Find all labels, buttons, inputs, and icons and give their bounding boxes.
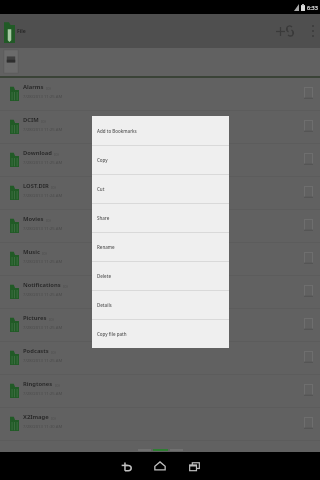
button[interactable]: Share	[92, 203, 229, 232]
button[interactable]: Select item	[299, 84, 317, 102]
staticText: (0)	[51, 350, 56, 355]
button[interactable]: Details	[92, 290, 229, 319]
button[interactable]: sdcard	[4, 50, 18, 73]
staticText: (0)	[46, 86, 51, 91]
button[interactable]: Back	[113, 452, 139, 480]
button[interactable]: Alarms	[0, 78, 320, 111]
staticText: (0)	[46, 218, 51, 223]
staticText: (0)	[51, 185, 56, 190]
button[interactable]: Add	[271, 20, 289, 42]
button[interactable]: LOST.DIR	[0, 177, 320, 210]
staticText: Copy file path	[97, 331, 127, 337]
staticText: 7/28/2013 11:25 AM	[23, 160, 63, 166]
staticText: File	[17, 28, 26, 35]
staticText: (0)	[42, 251, 47, 256]
button[interactable]: More options	[307, 20, 319, 42]
staticText: 6:33	[307, 4, 318, 11]
button[interactable]: Pictures	[0, 309, 320, 342]
staticText: 7/28/2013 11:24 AM	[23, 193, 63, 199]
button[interactable]: App icon	[4, 20, 15, 43]
staticText: 7/28/2013 11:25 AM	[23, 127, 63, 133]
staticText: 7/28/2013 11:30 AM	[23, 424, 63, 430]
button[interactable]: Select item	[299, 150, 317, 168]
staticText: (0)	[41, 119, 46, 124]
staticText: 7/28/2013 11:25 AM	[23, 391, 63, 397]
button[interactable]: Notifications	[0, 276, 320, 309]
staticText: LOST.DIR	[23, 182, 49, 190]
staticText: Pictures	[23, 314, 47, 322]
button[interactable]: Select item	[299, 315, 317, 333]
staticText: (0)	[51, 416, 56, 421]
button[interactable]: Select item	[299, 282, 317, 300]
staticText: Add to Bookmarks	[97, 128, 137, 134]
button[interactable]: Ringtones	[0, 375, 320, 408]
button[interactable]: DCIM	[0, 111, 320, 144]
button[interactable]: Select item	[299, 348, 317, 366]
staticText: Ringtones	[23, 380, 53, 388]
staticText: Copy	[97, 157, 108, 163]
staticText: 7/28/2013 11:25 AM	[23, 226, 63, 232]
staticText: Notifications	[23, 281, 61, 289]
staticText: 7/28/2013 11:25 AM	[23, 259, 63, 265]
staticText: Alarms	[23, 83, 44, 91]
button[interactable]: X2Image	[0, 408, 320, 441]
button[interactable]: Copy	[92, 145, 229, 174]
staticText: Podcasts	[23, 347, 49, 355]
staticText: (0)	[55, 383, 60, 388]
button[interactable]: Download	[0, 144, 320, 177]
button[interactable]: Cut	[92, 174, 229, 203]
staticText: (0)	[54, 152, 59, 157]
button[interactable]: Add to Bookmarks	[92, 116, 229, 145]
button[interactable]: Recent apps	[181, 452, 207, 480]
button[interactable]: Music	[0, 243, 320, 276]
staticText: Share	[97, 215, 110, 221]
button[interactable]: Select item	[299, 117, 317, 135]
button[interactable]: Select item	[299, 381, 317, 399]
staticText: Music	[23, 248, 40, 256]
staticText: (0)	[63, 284, 68, 289]
button[interactable]: Refresh	[281, 20, 299, 42]
button[interactable]: Podcasts	[0, 342, 320, 375]
staticText: Movies	[23, 215, 44, 223]
button[interactable]: Delete	[92, 261, 229, 290]
button[interactable]: Rename	[92, 232, 229, 261]
staticText: Rename	[97, 244, 115, 250]
staticText: 7/28/2013 11:25 AM	[23, 358, 63, 364]
button[interactable]: Select item	[299, 183, 317, 201]
staticText: Delete	[97, 273, 111, 279]
staticText: Cut	[97, 186, 105, 192]
button[interactable]: Select item	[299, 249, 317, 267]
staticText: 7/28/2013 11:25 AM	[23, 94, 63, 100]
staticText: X2Image	[23, 413, 49, 421]
staticText: 7/28/2013 11:25 AM	[23, 325, 63, 331]
button[interactable]: Copy file path	[92, 319, 229, 348]
staticText: Download	[23, 149, 52, 157]
button[interactable]: Select item	[299, 216, 317, 234]
staticText: (0)	[49, 317, 54, 322]
button[interactable]: Home	[147, 452, 173, 480]
staticText: Details	[97, 302, 112, 308]
staticText: DCIM	[23, 116, 39, 124]
staticText: 7/28/2013 11:25 AM	[23, 292, 63, 298]
button[interactable]: Movies	[0, 210, 320, 243]
button[interactable]: Select item	[299, 414, 317, 432]
